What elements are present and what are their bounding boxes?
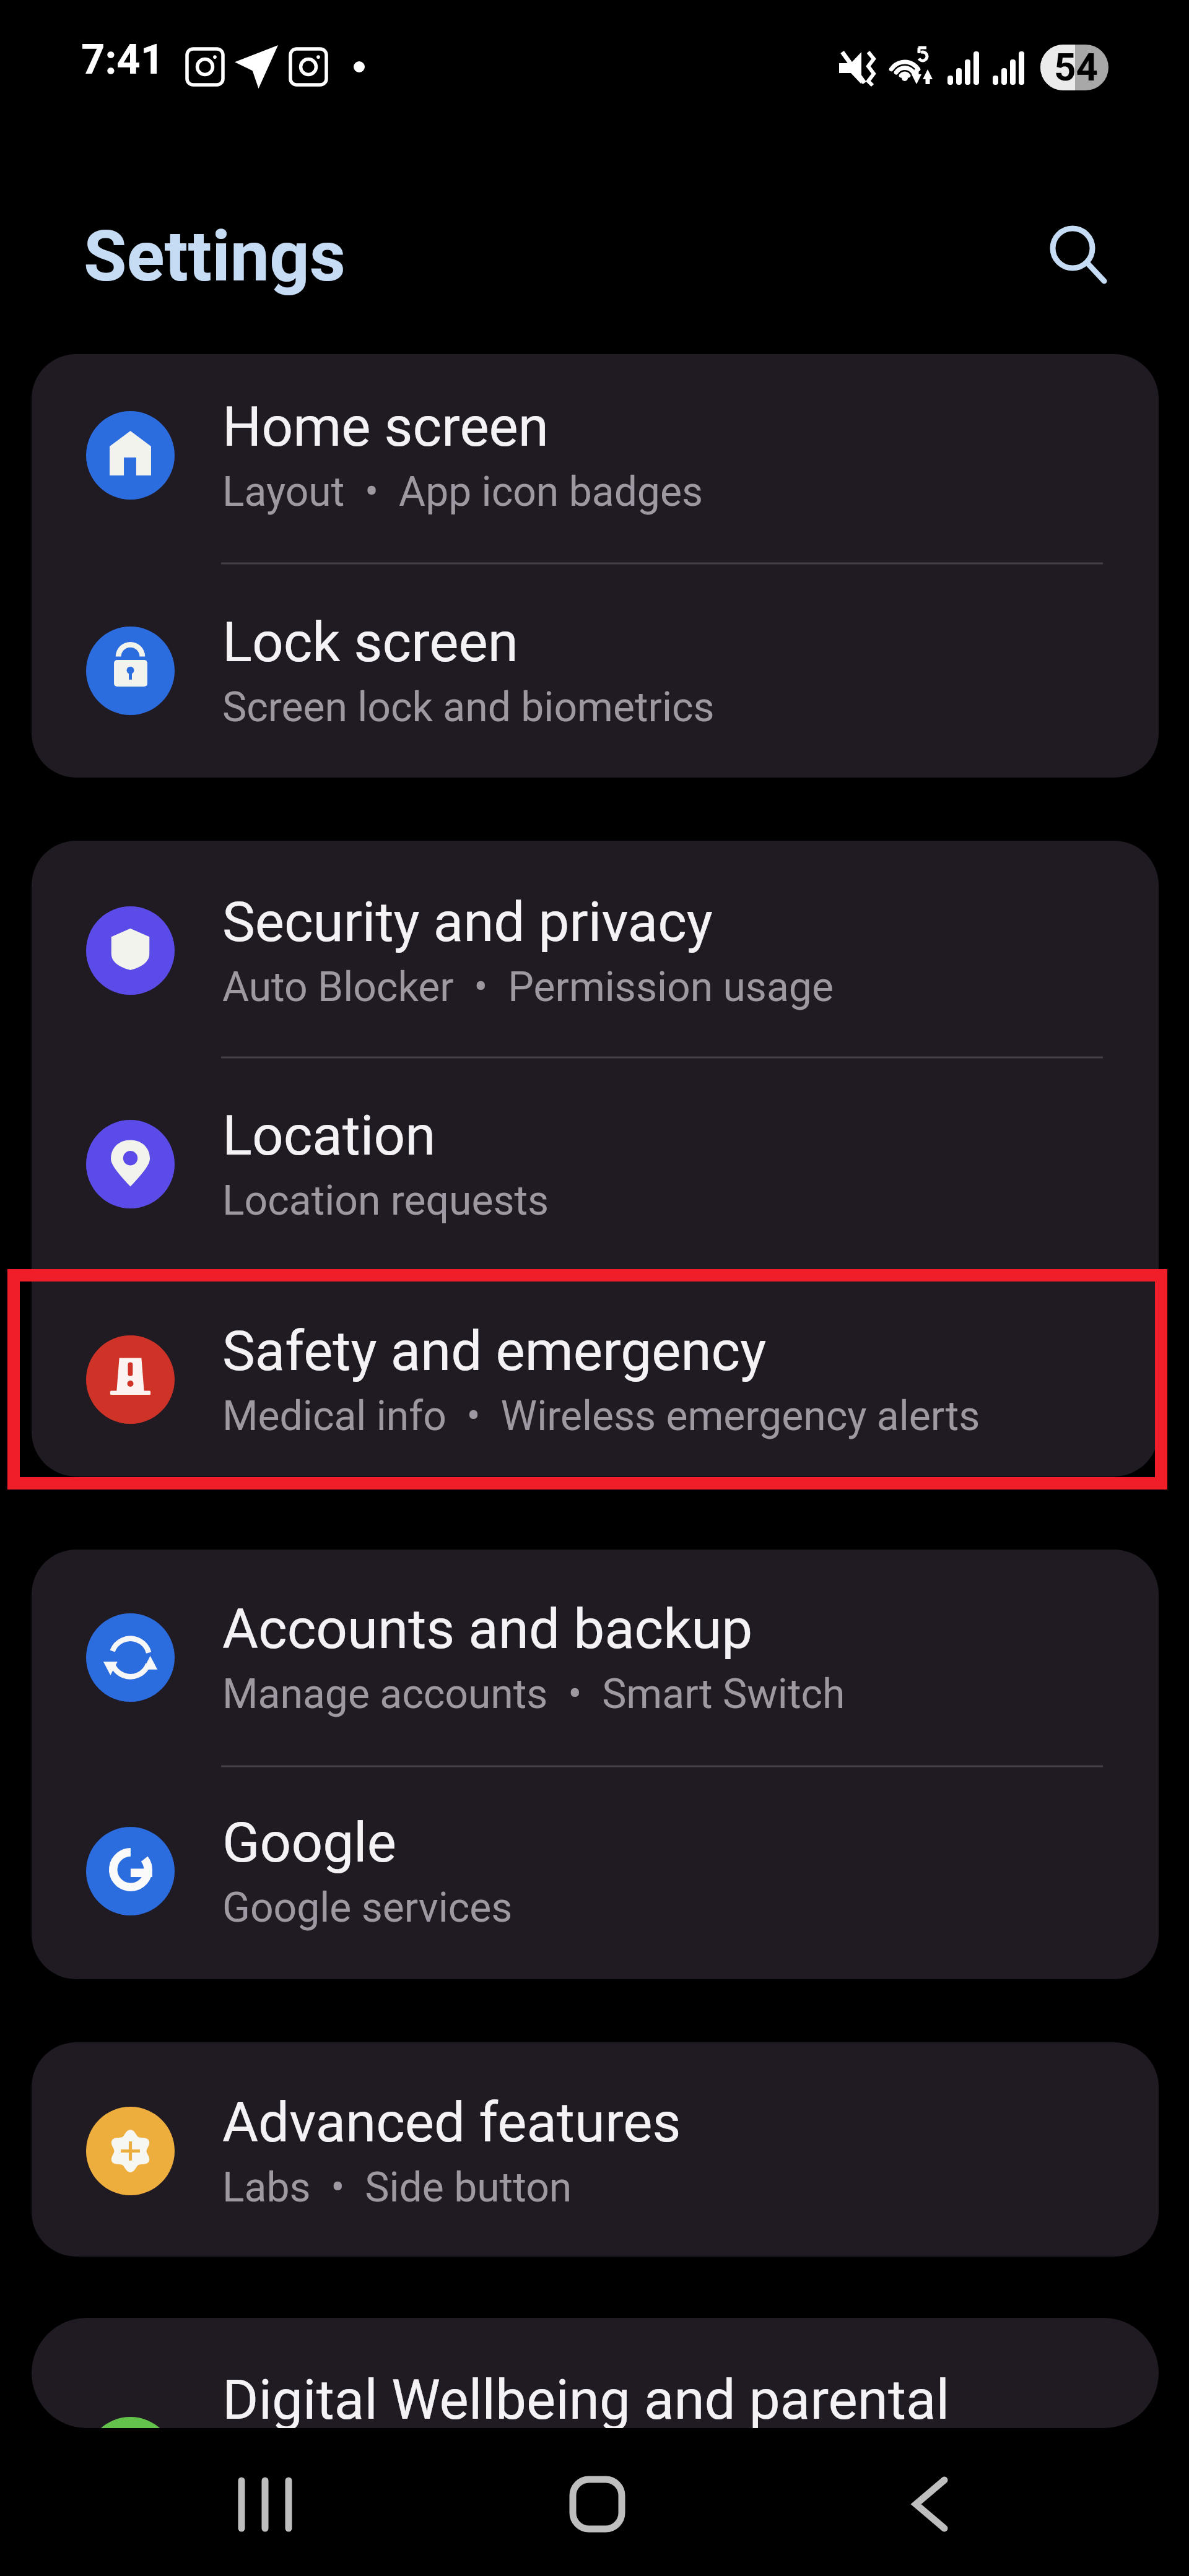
staticText: Advanced features: [222, 2090, 681, 2154]
button[interactable]: Accounts and backup: [32, 1551, 1159, 1763]
staticText: Google services: [222, 1884, 513, 1932]
button[interactable]: Digital Wellbeing and parental: [32, 2318, 1159, 2428]
staticText: Location: [222, 1103, 436, 1168]
button[interactable]: Home screen: [32, 354, 1159, 561]
button[interactable]: Home: [551, 2458, 643, 2551]
button[interactable]: Safety and emergency: [32, 1273, 1159, 1477]
staticText: Security and privacy: [222, 890, 713, 954]
staticText: Layout • App icon badges: [222, 468, 703, 516]
button[interactable]: Lock screen: [32, 565, 1159, 776]
staticText: Screen lock and biometrics: [222, 683, 715, 731]
staticText: Accounts and backup: [222, 1597, 753, 1661]
staticText: Location requests: [222, 1177, 549, 1225]
staticText: Auto Blocker • Permission usage: [222, 963, 834, 1011]
staticText: Settings: [84, 215, 346, 297]
staticText: Medical info • Wireless emergency alerts: [222, 1392, 980, 1440]
button[interactable]: Security and privacy: [32, 844, 1159, 1056]
staticText: 7:41: [81, 35, 165, 84]
staticText: Google: [222, 1810, 396, 1875]
staticText: Manage accounts • Smart Switch: [222, 1670, 845, 1718]
staticText: Digital Wellbeing and parental: [222, 2367, 950, 2428]
button[interactable]: Recent apps: [218, 2458, 311, 2551]
button[interactable]: Search: [1028, 203, 1118, 293]
button[interactable]: Location: [32, 1058, 1159, 1270]
button[interactable]: Google: [32, 1765, 1159, 1977]
staticText: Safety and emergency: [222, 1319, 767, 1383]
staticText: 54: [1054, 45, 1099, 90]
staticText: Home screen: [222, 394, 549, 459]
button[interactable]: Back: [884, 2458, 977, 2551]
button[interactable]: Advanced features: [32, 2045, 1159, 2257]
staticText: Labs • Side button: [222, 2164, 572, 2211]
staticText: Lock screen: [222, 610, 518, 674]
